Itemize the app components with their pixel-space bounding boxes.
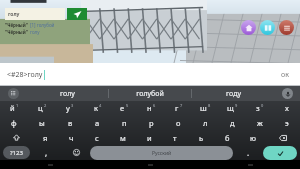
staticText: з [256,103,260,113]
button[interactable]: щ [219,101,246,115]
staticText: э [285,118,289,128]
button[interactable]: э [273,115,300,130]
staticText: х [285,103,289,113]
button[interactable]: году [192,86,274,101]
button[interactable]: голубой [109,86,191,101]
button[interactable]: п [111,115,138,130]
button[interactable]: е [111,101,138,115]
staticText: ы [39,118,45,128]
staticText: голу [8,11,20,18]
button[interactable]: и [136,130,162,145]
staticText: ф [11,118,17,128]
button[interactable]: Back [0,160,100,169]
button[interactable]: х [273,101,300,115]
button[interactable]: Menu [279,20,294,35]
staticText: я [43,133,48,143]
staticText: голу [60,89,75,99]
staticText: ц [38,103,43,113]
button[interactable]: в [56,115,84,130]
button[interactable]: Home [100,160,200,169]
button[interactable]: ш [192,101,219,115]
button[interactable]: ю [240,130,266,145]
staticText: т [173,133,177,143]
button[interactable]: р [138,115,165,130]
button[interactable]: Comma [30,145,62,160]
staticText: ок [281,70,289,80]
staticText: д [230,118,235,128]
button[interactable]: ь [188,130,214,145]
button[interactable]: Backspace [266,130,300,145]
staticText: Русский [152,150,172,157]
staticText: г [175,103,179,113]
button[interactable]: Home [241,20,256,35]
button[interactable]: ж [246,115,273,130]
staticText: ш [200,103,207,113]
staticText: ?123 [10,149,23,157]
button[interactable]: Period [233,145,263,160]
staticText: <#28>голу [7,70,43,80]
button[interactable]: л [192,115,219,130]
staticText: у [66,103,70,113]
button[interactable]: Русский [90,146,233,160]
button[interactable]: Send [67,8,87,20]
staticText: [1] голубой [30,22,55,28]
button[interactable]: ок [277,67,293,83]
staticText: ч [69,133,74,143]
staticText: , [45,147,48,158]
staticText: 2 [44,103,47,108]
button[interactable]: ы [28,115,56,130]
button[interactable]: ф [0,115,28,130]
staticText: голу [30,29,40,35]
button[interactable]: з [246,101,273,115]
staticText: 6 [153,103,156,108]
staticText: п [122,118,127,128]
button[interactable]: голу [5,8,65,20]
staticText: б [225,133,230,143]
button[interactable]: Keyboard settings [0,86,26,101]
button[interactable]: к [84,101,111,115]
staticText: 3 [71,103,74,108]
staticText: ж [257,118,263,128]
button[interactable]: Emoji [62,145,90,160]
button[interactable]: <#28>голу [0,63,300,86]
button[interactable]: ?123 [3,146,30,159]
button[interactable]: г [165,101,192,115]
button[interactable]: Map [260,20,275,35]
button[interactable]: о [165,115,192,130]
button[interactable]: Enter [263,146,297,160]
staticText: 4 [99,103,102,108]
staticText: р [149,118,154,128]
staticText: к [94,103,98,113]
staticText: 8 [208,103,211,108]
button[interactable]: с [84,130,110,145]
button[interactable]: т [162,130,188,145]
button[interactable]: д [219,115,246,130]
button[interactable]: ц [28,101,56,115]
button[interactable]: Voice input [274,86,300,101]
staticText: ь [199,133,204,143]
staticText: о [176,118,181,128]
staticText: 7 [180,103,183,108]
staticText: а [95,118,100,128]
button[interactable]: у [56,101,84,115]
staticText: щ [227,103,234,113]
staticText: в [68,118,73,128]
button[interactable]: б [214,130,240,145]
button[interactable]: я [33,130,58,145]
staticText: . [247,147,250,158]
staticText: 5 [126,103,129,108]
staticText: 1 [16,103,19,108]
button[interactable]: й [0,101,28,115]
staticText: ю [250,133,256,143]
staticText: й [10,103,15,113]
button[interactable]: Shift [0,130,33,145]
button[interactable]: м [110,130,136,145]
button[interactable]: ч [58,130,84,145]
staticText: н [147,103,152,113]
staticText: "Чёрный" [5,22,28,28]
button[interactable]: голу [26,86,108,101]
button[interactable]: н [138,101,165,115]
button[interactable]: а [84,115,111,130]
staticText: м [120,133,126,143]
button[interactable]: Recents [200,160,300,169]
